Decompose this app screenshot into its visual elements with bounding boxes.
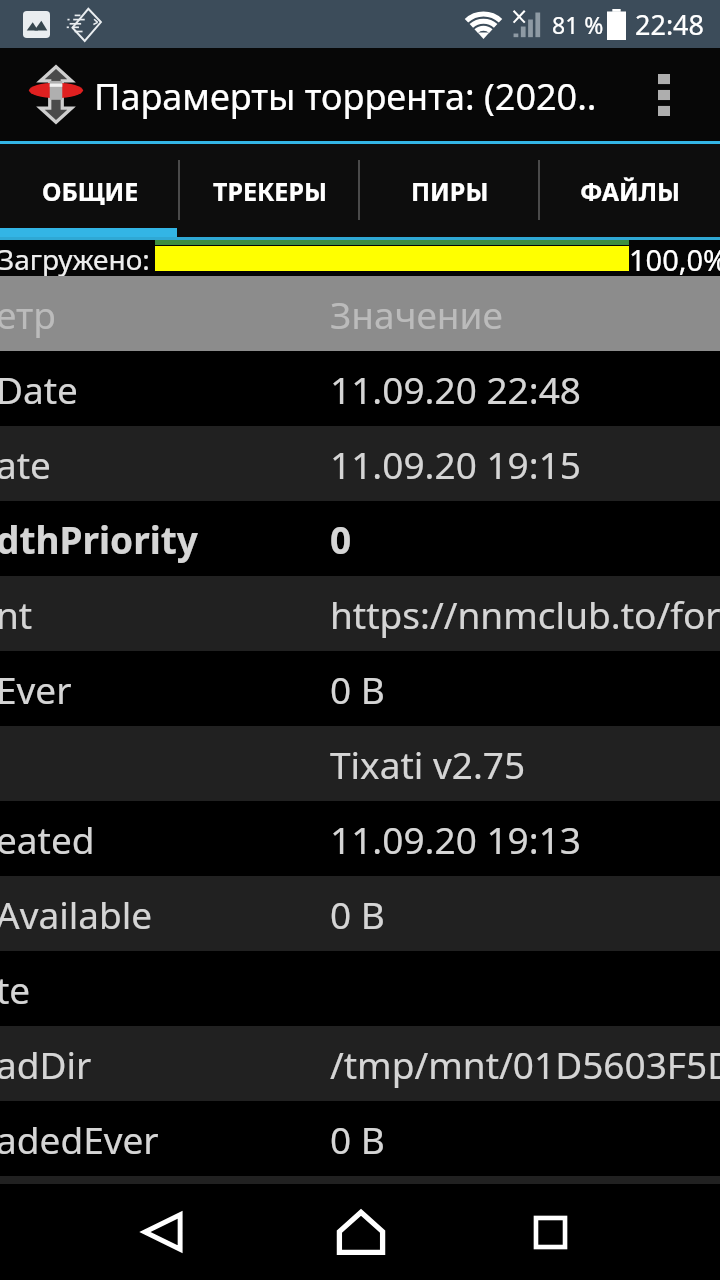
button[interactable]: ОБЩИЕ bbox=[0, 144, 180, 237]
button[interactable]: nt bbox=[0, 576, 720, 651]
staticText: Загружено: bbox=[0, 240, 150, 276]
staticText: ТРЕКЕРЫ bbox=[213, 174, 327, 208]
staticText: Парамерты торрента: (2020.. bbox=[94, 72, 624, 121]
button[interactable]: Ever bbox=[0, 651, 720, 726]
staticText: ОБЩИЕ bbox=[42, 174, 139, 208]
button[interactable]: eated bbox=[0, 801, 720, 876]
staticText: https://nnmclub.to/foru bbox=[330, 589, 720, 639]
button[interactable]: More options bbox=[624, 48, 720, 141]
button[interactable]: Home bbox=[301, 1184, 421, 1280]
button[interactable] bbox=[0, 1176, 720, 1251]
staticText: Значение bbox=[330, 289, 503, 339]
staticText: ate bbox=[0, 439, 51, 489]
button[interactable]: Tixati v2.75 bbox=[0, 726, 720, 801]
staticText: ПИРЫ bbox=[411, 174, 489, 208]
staticText: етр bbox=[0, 289, 56, 339]
staticText: dthPriority bbox=[0, 514, 198, 564]
staticText: 100,0% bbox=[629, 240, 720, 276]
staticText: eated bbox=[0, 814, 95, 864]
staticText: Ever bbox=[0, 664, 72, 714]
staticText: nt bbox=[0, 589, 33, 639]
button[interactable]: Available bbox=[0, 876, 720, 951]
button[interactable]: Back bbox=[102, 1184, 222, 1280]
button[interactable]: Recent apps bbox=[490, 1184, 610, 1280]
staticText: Available bbox=[0, 889, 153, 939]
staticText: 0 bbox=[330, 514, 352, 564]
staticText: 11.09.20 19:13 bbox=[330, 814, 582, 864]
staticText: 22:48 bbox=[635, 6, 705, 43]
staticText: te bbox=[0, 964, 31, 1014]
staticText: Date bbox=[0, 364, 78, 414]
staticText: 0 B bbox=[330, 664, 385, 714]
staticText: 11.09.20 19:15 bbox=[330, 439, 582, 489]
staticText: 11.09.20 22:48 bbox=[330, 364, 582, 414]
button[interactable]: te bbox=[0, 951, 720, 1026]
staticText: Tixati v2.75 bbox=[330, 739, 526, 789]
button[interactable]: adedEver bbox=[0, 1101, 720, 1176]
staticText: /tmp/mnt/01D5603F5D bbox=[330, 1039, 720, 1089]
staticText: 0 B bbox=[330, 889, 385, 939]
staticText: 81 % bbox=[552, 9, 604, 40]
staticText: adedEver bbox=[0, 1114, 159, 1164]
button[interactable]: Date bbox=[0, 351, 720, 426]
staticText: 0 B bbox=[330, 1114, 385, 1164]
button[interactable]: ТРЕКЕРЫ bbox=[180, 144, 360, 237]
button[interactable]: adDir bbox=[0, 1026, 720, 1101]
button[interactable]: ate bbox=[0, 426, 720, 501]
staticText: adDir bbox=[0, 1039, 92, 1089]
button[interactable]: ФАЙЛЫ bbox=[540, 144, 720, 237]
button[interactable]: ПИРЫ bbox=[360, 144, 540, 237]
staticText: ФАЙЛЫ bbox=[580, 174, 681, 208]
button[interactable]: dthPriority bbox=[0, 501, 720, 576]
